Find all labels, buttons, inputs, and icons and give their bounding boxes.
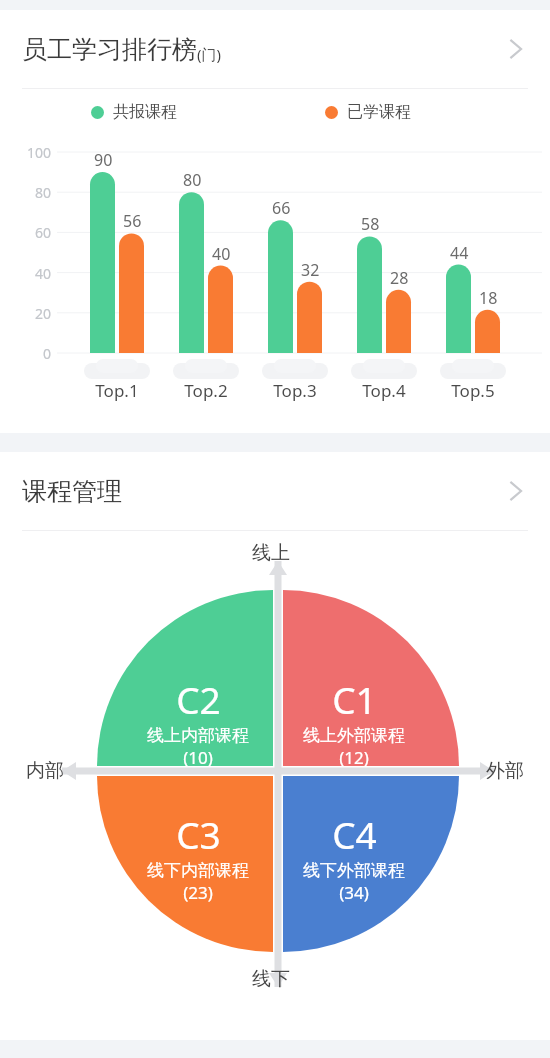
staticText: Top.5 [451, 379, 495, 402]
button[interactable]: C3 [120, 809, 276, 904]
staticText: (34) [339, 881, 369, 904]
staticText: 线上内部课程 [147, 725, 249, 746]
staticText: 外部 [486, 759, 524, 783]
staticText: (门) [197, 44, 222, 64]
staticText: C3 [176, 809, 221, 859]
button[interactable]: C1 [276, 674, 432, 769]
staticText: 共报课程 [113, 102, 177, 122]
staticText: (12) [339, 746, 369, 769]
staticText: 线下 [252, 967, 290, 991]
staticText: 20 [35, 304, 52, 323]
staticText: Top.3 [273, 379, 317, 402]
staticText: 32 [301, 259, 320, 281]
staticText: 已学课程 [347, 102, 411, 122]
staticText: 线上 [252, 541, 290, 565]
staticText: 80 [183, 169, 202, 191]
button[interactable]: C2 [120, 674, 276, 769]
staticText: 58 [361, 213, 380, 235]
staticText: C4 [332, 809, 377, 859]
staticText: 90 [94, 149, 113, 171]
staticText: 员工学习排行榜 [22, 34, 197, 65]
staticText: Top.4 [362, 379, 406, 402]
button[interactable]: C4 [276, 809, 432, 904]
staticText: (23) [183, 881, 213, 904]
staticText: 40 [35, 264, 52, 283]
staticText: 80 [35, 183, 52, 202]
staticText: C1 [332, 674, 377, 724]
staticText: 课程管理 [22, 476, 122, 507]
staticText: 18 [479, 287, 498, 309]
staticText: 线上外部课程 [303, 725, 405, 746]
staticText: 内部 [26, 759, 64, 783]
staticText: 40 [212, 243, 231, 265]
staticText: 28 [390, 267, 409, 289]
button[interactable]: Open employee learning ranking [0, 10, 550, 88]
staticText: 56 [123, 210, 142, 232]
staticText: 线下内部课程 [147, 860, 249, 881]
staticText: 60 [35, 223, 52, 242]
staticText: 66 [272, 197, 291, 219]
staticText: Top.1 [95, 379, 139, 402]
staticText: 44 [450, 242, 469, 264]
staticText: C2 [176, 674, 221, 724]
staticText: 0 [43, 344, 52, 363]
button[interactable]: Open course management [0, 452, 550, 530]
staticText: (10) [183, 746, 213, 769]
staticText: 线下外部课程 [303, 860, 405, 881]
staticText: 100 [27, 143, 52, 162]
staticText: Top.2 [184, 379, 228, 402]
